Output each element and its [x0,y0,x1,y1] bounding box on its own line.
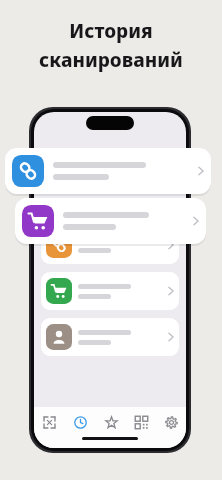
button[interactable]: Scan [34,407,65,437]
button[interactable] [41,272,179,310]
staticText: сканирований [39,47,183,73]
button[interactable]: Settings [156,407,186,437]
button[interactable]: History [65,407,96,437]
staticText: История [69,18,153,44]
button[interactable]: Codes [126,407,156,437]
button[interactable] [5,148,211,194]
button[interactable] [15,198,206,244]
button[interactable]: Favorites [96,407,126,437]
button[interactable] [41,318,179,356]
button[interactable] [41,226,179,264]
